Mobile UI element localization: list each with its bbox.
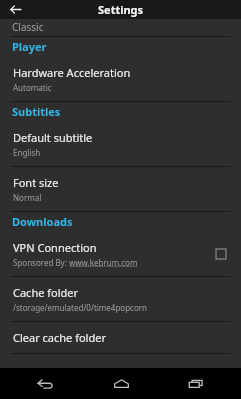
button[interactable]: VPN Connection — [0, 232, 241, 276]
staticText: Hardware Acceleration — [13, 65, 131, 80]
button[interactable]: Back — [0, 0, 30, 19]
staticText: Default subtitle — [13, 130, 93, 145]
staticText: Downloads — [12, 214, 73, 229]
staticText: Classic — [12, 20, 44, 34]
button[interactable]: Clear cache folder — [0, 322, 241, 353]
staticText: /storage/emulated/0/time4popcorn — [13, 302, 148, 313]
staticText: English — [13, 147, 41, 158]
staticText: VPN Connection — [13, 240, 97, 255]
staticText: Player — [12, 39, 47, 54]
staticText: Settings — [98, 2, 144, 17]
button[interactable]: Back — [15, 368, 75, 399]
staticText: Subtitles — [12, 104, 61, 119]
staticText: www.kebrum.com — [69, 257, 138, 268]
button[interactable]: Hardware Acceleration — [0, 57, 241, 101]
button[interactable]: VPN Connection checkbox — [211, 244, 231, 264]
button[interactable]: Recent apps — [166, 368, 226, 399]
staticText: Cache folder — [13, 285, 79, 300]
button[interactable]: Home — [91, 368, 151, 399]
staticText: Font size — [13, 175, 59, 190]
button[interactable]: Classic — [0, 19, 241, 36]
staticText: Normal — [13, 192, 42, 203]
staticText: Clear cache folder — [13, 330, 106, 345]
button[interactable]: Font size — [0, 167, 241, 211]
button[interactable]: Default subtitle — [0, 122, 241, 166]
staticText: Automatic — [13, 82, 52, 93]
staticText: Sponsored By: — [13, 257, 69, 268]
button[interactable]: Cache folder — [0, 277, 241, 321]
